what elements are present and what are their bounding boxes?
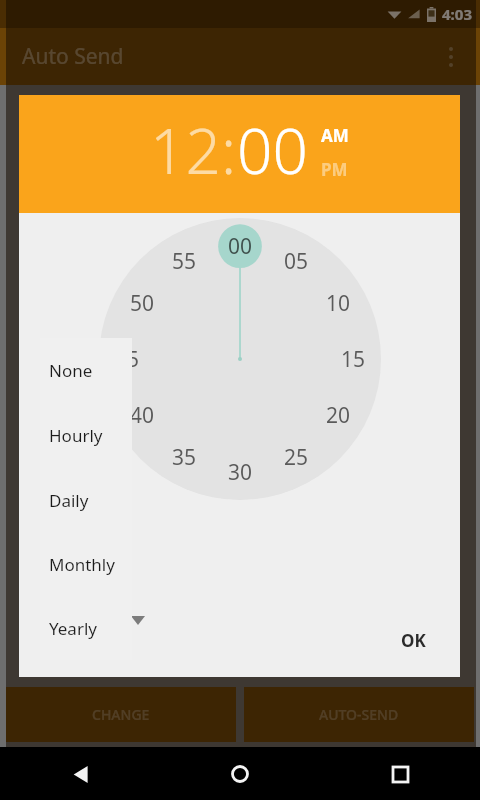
staticText: 50 (130, 289, 155, 318)
staticText: : (221, 108, 237, 192)
staticText: 25 (284, 443, 309, 472)
button[interactable]: Minute dial (99, 218, 381, 500)
staticText: 55 (172, 247, 197, 276)
staticText: 20 (326, 401, 351, 430)
staticText: CHANGE (92, 705, 150, 724)
staticText: 00 (228, 232, 253, 261)
button[interactable]: Hourly (40, 403, 132, 468)
button[interactable]: Recents (376, 750, 424, 798)
staticText: 35 (172, 443, 197, 472)
staticText: Auto Send (22, 42, 124, 71)
staticText: 4:03 (442, 4, 472, 24)
button[interactable]: Monthly (40, 532, 132, 596)
staticText: Yearly (49, 617, 97, 640)
staticText: Hourly (49, 424, 103, 447)
button[interactable]: More options (432, 38, 470, 76)
staticText: 45 (115, 345, 140, 374)
button[interactable]: 12 (150, 108, 221, 192)
staticText: 40 (130, 401, 155, 430)
button[interactable]: CHANGE (6, 687, 236, 742)
staticText: 10 (326, 289, 351, 318)
staticText: None (49, 359, 93, 382)
staticText: 05 (284, 247, 309, 276)
button[interactable]: 00 (237, 108, 308, 192)
button[interactable]: None (40, 338, 132, 403)
button[interactable]: Home (216, 750, 264, 798)
staticText: 30 (228, 458, 253, 487)
button[interactable]: Back (56, 750, 104, 798)
staticText: 15 (341, 345, 366, 374)
staticText: OK (401, 629, 426, 652)
button[interactable]: AUTO-SEND (244, 687, 474, 742)
button[interactable]: AM (321, 124, 349, 147)
button[interactable]: Yearly (40, 596, 132, 660)
button[interactable]: OK (387, 620, 440, 661)
button[interactable]: Daily (40, 468, 132, 532)
button[interactable]: PM (321, 158, 348, 181)
staticText: AUTO-SEND (319, 705, 399, 724)
staticText: Daily (49, 489, 89, 512)
staticText: Monthly (49, 553, 115, 576)
